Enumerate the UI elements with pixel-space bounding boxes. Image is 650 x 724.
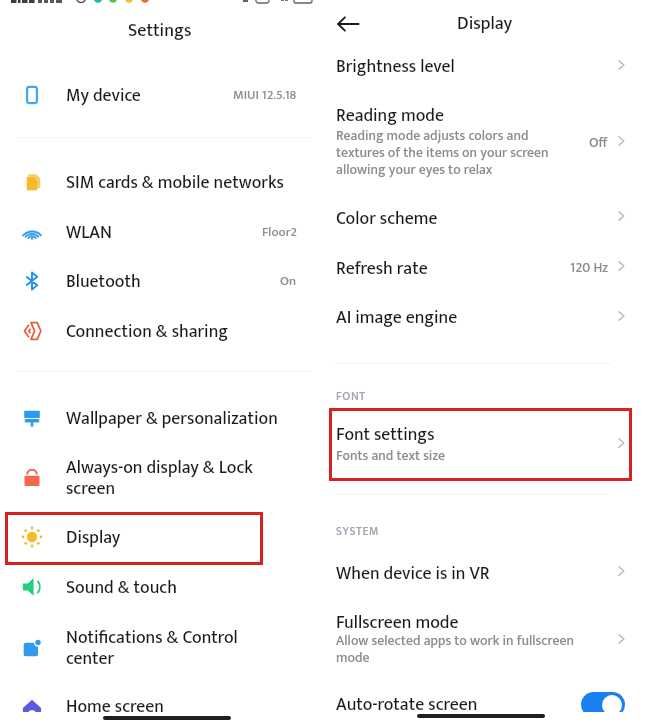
button[interactable]: My device	[0, 70, 320, 120]
button[interactable]: Connection & sharing	[0, 306, 320, 356]
staticText: On	[280, 270, 297, 292]
staticText: Brightness level	[336, 52, 455, 76]
staticText: Home screen	[66, 692, 164, 712]
button[interactable]: Always-on display & Lock screen	[0, 453, 320, 503]
button[interactable]: Reading mode	[320, 93, 650, 179]
staticText: AI image engine	[336, 303, 458, 327]
staticText: Refresh rate	[336, 254, 428, 278]
staticText: Always-on display & Lock screen	[66, 453, 288, 503]
button[interactable]: Back	[330, 6, 366, 42]
button[interactable]: AI image engine	[320, 293, 650, 337]
staticText: SIM cards & mobile networks	[66, 168, 284, 197]
button[interactable]: Fullscreen mode	[320, 598, 650, 668]
staticText: Floor2	[262, 221, 297, 243]
staticText: My device	[66, 81, 141, 110]
staticText: Bluetooth	[66, 267, 141, 296]
button[interactable]: Home screen	[0, 681, 320, 712]
button[interactable]: Sound & touch	[0, 562, 320, 612]
staticText: MIUI 12.5.18	[233, 84, 297, 106]
staticText: Reading mode	[336, 101, 444, 125]
staticText: Display	[66, 523, 121, 552]
staticText: WLAN	[66, 218, 112, 247]
staticText: Display	[457, 9, 513, 39]
button[interactable]: Bluetooth	[0, 256, 320, 306]
button[interactable]: Font settings	[320, 412, 650, 472]
staticText: Sound & touch	[66, 573, 177, 602]
staticText: Wallpaper & personalization	[66, 404, 278, 433]
staticText: Settings	[128, 16, 192, 42]
staticText: When device is in VR	[336, 559, 490, 583]
button[interactable]: Brightness level	[320, 42, 650, 86]
button[interactable]: When device is in VR	[320, 549, 650, 593]
button[interactable]: Auto-rotate screen	[320, 681, 650, 712]
button[interactable]: Color scheme	[320, 194, 650, 238]
staticText: Fullscreen mode	[336, 608, 459, 632]
button[interactable]: Wallpaper & personalization	[0, 393, 320, 443]
button[interactable]: Refresh rate	[320, 244, 650, 288]
staticText: Color scheme	[336, 204, 438, 228]
staticText: Fonts and text size	[336, 444, 445, 467]
staticText: Off	[589, 131, 608, 151]
button[interactable]: WLAN	[0, 207, 320, 257]
staticText: Reading mode adjusts colors and textures…	[336, 124, 549, 181]
staticText: Connection & sharing	[66, 317, 228, 346]
button[interactable]: SIM cards & mobile networks	[0, 157, 320, 207]
staticText: Font settings	[336, 420, 435, 444]
button[interactable]: Display	[0, 512, 320, 562]
staticText: Notifications & Control center	[66, 623, 288, 673]
staticText: FONT	[336, 387, 366, 405]
staticText: 120 Hz	[570, 256, 608, 276]
staticText: Auto-rotate screen	[336, 690, 478, 712]
button[interactable]: Notifications & Control center	[0, 623, 320, 673]
staticText: Allow selected apps to work in fullscree…	[336, 629, 574, 669]
staticText: SYSTEM	[336, 522, 380, 540]
